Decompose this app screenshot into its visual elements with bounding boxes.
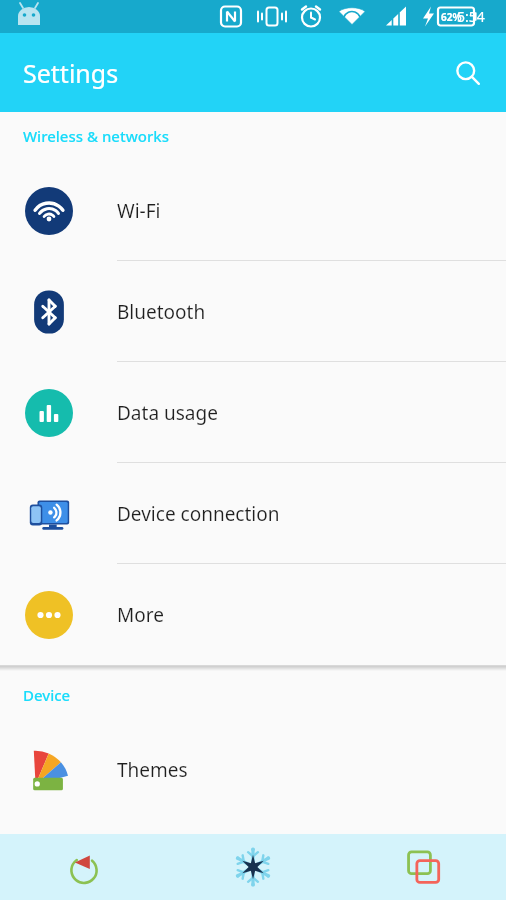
button[interactable]: Search: [444, 49, 492, 97]
button[interactable]: Home: [168, 834, 337, 900]
button[interactable]: Themes: [0, 719, 506, 820]
staticText: More: [117, 602, 164, 628]
button[interactable]: Back: [0, 834, 168, 900]
staticText: Settings: [23, 56, 119, 90]
staticText: Themes: [117, 757, 188, 783]
staticText: Bluetooth: [117, 299, 206, 325]
staticText: Wi-Fi: [117, 198, 161, 224]
button[interactable]: Data usage: [0, 362, 506, 463]
staticText: Device connection: [117, 501, 280, 527]
staticText: Wireless & networks: [23, 126, 169, 146]
button[interactable]: Device connection: [0, 463, 506, 564]
staticText: 62%: [441, 10, 462, 24]
button[interactable]: Wi-Fi: [0, 160, 506, 261]
staticText: Data usage: [117, 400, 218, 426]
button[interactable]: Recent apps: [337, 834, 506, 900]
button[interactable]: More: [0, 564, 506, 665]
staticText: Device: [23, 685, 71, 705]
button[interactable]: Bluetooth: [0, 261, 506, 362]
staticText: 5:54: [457, 7, 485, 26]
